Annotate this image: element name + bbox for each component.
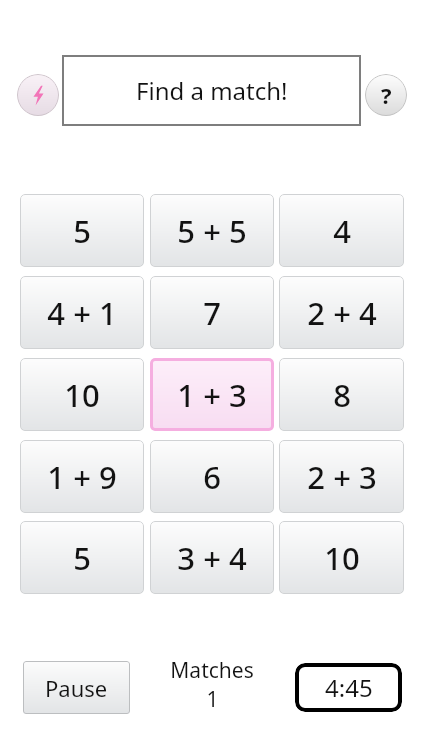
staticText: 3 + 4 — [177, 537, 247, 579]
staticText: 1 + 3 — [177, 374, 247, 416]
staticText: 5 + 5 — [177, 210, 247, 252]
staticText: Matches — [170, 656, 254, 685]
staticText: ? — [381, 80, 392, 110]
staticText: 4 — [333, 210, 351, 252]
staticText: 6 — [203, 456, 221, 498]
staticText: 4:45 — [325, 671, 373, 704]
button[interactable]: Pause — [23, 661, 130, 714]
staticText: Find a match! — [136, 74, 288, 107]
button[interactable]: 5 — [20, 521, 144, 594]
button[interactable]: 8 — [279, 358, 404, 431]
button[interactable]: 5 + 5 — [150, 194, 274, 267]
button[interactable]: Hint — [17, 74, 59, 116]
button[interactable]: 1 + 9 — [20, 440, 144, 513]
staticText: 2 + 3 — [307, 456, 377, 498]
staticText: 1 + 9 — [47, 456, 117, 498]
button[interactable]: 4 + 1 — [20, 276, 144, 349]
staticText: 4 + 1 — [47, 292, 117, 334]
button[interactable]: 2 + 3 — [279, 440, 404, 513]
button[interactable]: Help — [365, 74, 407, 116]
staticText: 10 — [324, 537, 360, 579]
button[interactable]: 10 — [279, 521, 404, 594]
button[interactable]: Find a match! — [62, 55, 361, 126]
button[interactable]: 6 — [150, 440, 274, 513]
staticText: 2 + 4 — [307, 292, 377, 334]
staticText: 1 — [206, 685, 219, 714]
button[interactable]: 2 + 4 — [279, 276, 404, 349]
staticText: 5 — [73, 537, 91, 579]
button[interactable]: 4:45 — [295, 663, 402, 712]
button[interactable]: 10 — [20, 358, 144, 431]
staticText: 10 — [64, 374, 100, 416]
button[interactable]: 3 + 4 — [150, 521, 274, 594]
staticText: Pause — [45, 673, 108, 703]
button[interactable]: 5 — [20, 194, 144, 267]
staticText: 5 — [73, 210, 91, 252]
staticText: 8 — [333, 374, 351, 416]
staticText: 7 — [203, 292, 221, 334]
button[interactable]: 4 — [279, 194, 404, 267]
button[interactable]: 7 — [150, 276, 274, 349]
button[interactable]: 1 + 3 — [150, 358, 274, 431]
